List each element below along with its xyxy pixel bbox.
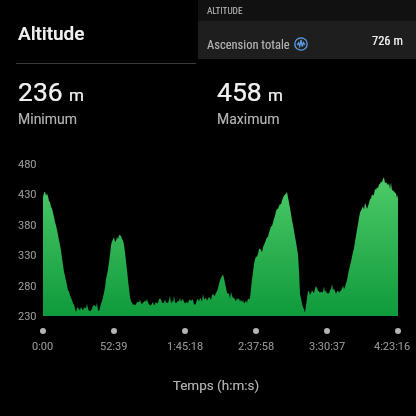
staticText: 1:45:18 [167,340,204,353]
staticText: 2:37:58 [238,340,275,353]
staticText: 0:00 [32,340,54,353]
staticText: 3:30:37 [309,340,346,353]
button[interactable]: Ascension totale [198,21,416,59]
staticText: 458 [217,76,262,107]
staticText: 230 [18,310,37,323]
staticText: 52:39 [100,340,128,353]
staticText: 280 [18,280,37,293]
staticText: Minimum [18,111,78,127]
staticText: Altitude [18,22,85,44]
staticText: Ascension totale [207,37,290,52]
staticText: ALTITUDE [207,5,243,16]
staticText: m [268,85,283,105]
staticText: Temps (h:m:s) [16,377,416,393]
staticText: 430 [18,188,37,201]
staticText: Maximum [217,111,280,127]
staticText: 380 [18,219,37,232]
other: Ascension totale [294,37,308,51]
staticText: 726 m [372,33,403,48]
staticText: m [69,85,84,105]
staticText: 236 [18,76,63,107]
staticText: 480 [18,158,37,171]
staticText: 330 [18,249,37,262]
staticText: 4:23:16 [374,340,411,353]
